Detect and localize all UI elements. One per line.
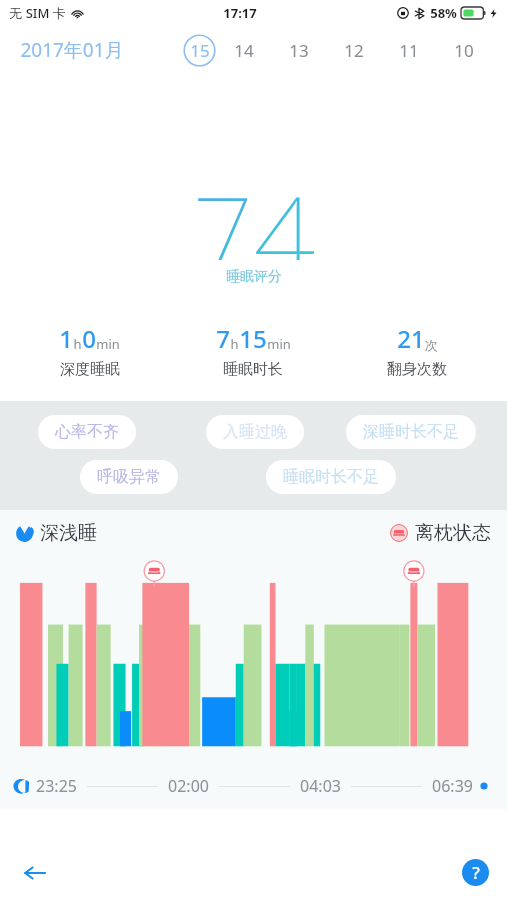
staticText: 深浅睡 bbox=[40, 521, 97, 545]
staticText: 无 SIM 卡 bbox=[9, 4, 66, 22]
staticText: 入睡过晚 bbox=[223, 422, 287, 442]
staticText: 15 bbox=[239, 322, 267, 355]
staticText: 2017年01月 bbox=[20, 37, 124, 63]
staticText: 离枕状态 bbox=[415, 521, 491, 545]
button[interactable]: 13 bbox=[271, 26, 326, 74]
button[interactable]: Back bbox=[18, 856, 52, 890]
staticText: 10 bbox=[454, 39, 474, 62]
button[interactable]: 15 bbox=[183, 34, 216, 67]
staticText: 翻身次数 bbox=[387, 360, 447, 379]
staticText: 次 bbox=[425, 337, 438, 353]
staticText: 12 bbox=[344, 39, 364, 62]
button[interactable]: 睡眠时长不足 bbox=[266, 460, 396, 494]
staticText: 58% bbox=[430, 4, 457, 22]
staticText: 74 bbox=[192, 160, 316, 260]
staticText: h bbox=[73, 335, 82, 353]
staticText: 睡眠时长 bbox=[223, 360, 283, 379]
staticText: 睡眠时长不足 bbox=[283, 467, 379, 487]
staticText: 13 bbox=[289, 39, 309, 62]
staticText: 1 bbox=[59, 322, 73, 355]
other: 离枕状态 bbox=[390, 524, 408, 542]
staticText: 23:25 bbox=[36, 775, 77, 797]
staticText: 02:00 bbox=[168, 775, 209, 797]
other: 深浅睡 bbox=[16, 525, 33, 542]
button[interactable]: 10 bbox=[436, 26, 491, 74]
staticText: ? bbox=[472, 861, 480, 884]
staticText: 呼吸异常 bbox=[97, 467, 161, 487]
staticText: 21 bbox=[397, 322, 425, 355]
staticText: 深睡时长不足 bbox=[363, 422, 459, 442]
button[interactable]: 11 bbox=[381, 26, 436, 74]
button[interactable]: 2017年01月 bbox=[20, 37, 124, 63]
staticText: 深度睡眠 bbox=[60, 360, 120, 379]
button[interactable]: Help bbox=[462, 859, 489, 886]
button[interactable]: 心率不齐 bbox=[38, 415, 136, 449]
staticText: 17:17 bbox=[223, 4, 257, 22]
staticText: min bbox=[267, 335, 291, 353]
staticText: 睡眠评分 bbox=[226, 268, 282, 286]
button[interactable]: 12 bbox=[326, 26, 381, 74]
staticText: 15 bbox=[190, 39, 210, 62]
button[interactable]: 14 bbox=[216, 26, 271, 74]
button[interactable]: 入睡过晚 bbox=[206, 415, 304, 449]
staticText: 14 bbox=[234, 39, 254, 62]
button[interactable]: 深睡时长不足 bbox=[346, 415, 476, 449]
button[interactable]: 离枕状态 bbox=[390, 521, 491, 545]
button[interactable]: 呼吸异常 bbox=[80, 460, 178, 494]
staticText: min bbox=[96, 335, 120, 353]
staticText: h bbox=[230, 335, 239, 353]
button[interactable]: 深浅睡 bbox=[16, 521, 97, 545]
staticText: 11 bbox=[399, 39, 419, 62]
staticText: 06:39 bbox=[432, 775, 473, 797]
staticText: 7 bbox=[216, 322, 230, 355]
staticText: 心率不齐 bbox=[55, 422, 119, 442]
staticText: 04:03 bbox=[300, 775, 341, 797]
staticText: 0 bbox=[82, 322, 96, 355]
